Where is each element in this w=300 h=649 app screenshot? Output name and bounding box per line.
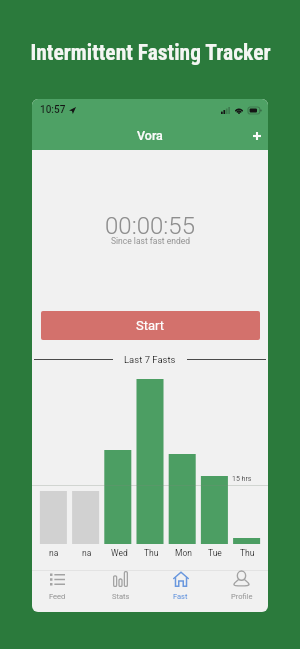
button[interactable]: Add fast — [247, 126, 267, 146]
staticText: Wed — [111, 548, 128, 558]
button[interactable]: Profile — [209, 570, 268, 612]
staticText: Profile — [231, 592, 253, 601]
staticText: Fast — [173, 592, 188, 601]
staticText: 00:00:55 — [105, 212, 195, 240]
button[interactable]: Feed — [32, 570, 91, 612]
staticText: Tue — [208, 548, 222, 558]
staticText: Mon — [175, 548, 192, 558]
staticText: Stats — [112, 592, 130, 601]
button[interactable]: Stats — [91, 570, 150, 612]
staticText: Last 7 Fasts — [124, 354, 176, 365]
button[interactable]: Fast — [150, 570, 209, 612]
staticText: Feed — [49, 592, 66, 601]
staticText: Vora — [137, 128, 163, 143]
staticText: 15 hrs — [232, 475, 252, 483]
staticText: Thu — [240, 548, 255, 558]
staticText: na — [82, 548, 92, 558]
staticText: Thu — [144, 548, 159, 558]
button[interactable]: Start — [41, 311, 260, 340]
staticText: Since last fast ended — [111, 236, 190, 246]
staticText: Intermittent Fasting Tracker — [30, 40, 271, 65]
staticText: 10:57 — [40, 104, 66, 116]
staticText: na — [49, 548, 59, 558]
staticText: Start — [136, 318, 165, 333]
